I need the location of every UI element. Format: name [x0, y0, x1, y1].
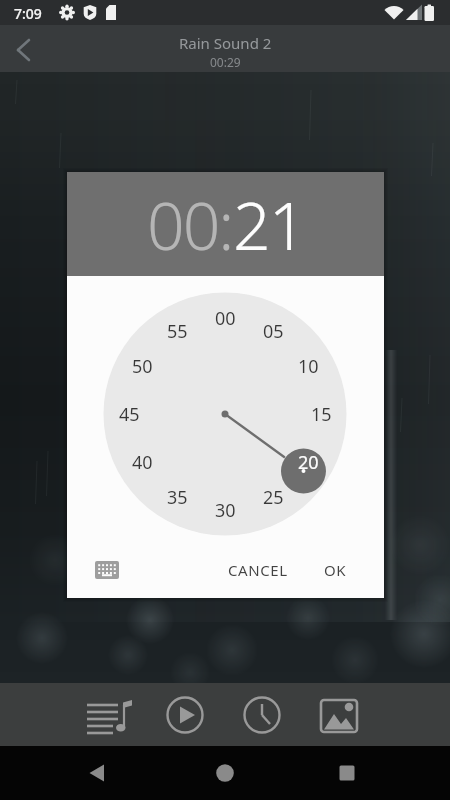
staticText: Rain Sound 2: [179, 33, 272, 53]
staticText: 35: [167, 485, 188, 510]
button[interactable]: [203, 751, 247, 795]
staticText: 55: [167, 319, 188, 344]
button[interactable]: [83, 692, 129, 738]
staticText: 00: [215, 306, 236, 331]
staticText: 45: [119, 402, 140, 427]
button[interactable]: [75, 751, 119, 795]
button[interactable]: [239, 692, 285, 738]
staticText: 50: [132, 354, 153, 379]
button[interactable]: [325, 751, 369, 795]
staticText: 40: [132, 450, 153, 475]
staticText: 30: [215, 498, 236, 523]
staticText: CANCEL: [228, 560, 288, 580]
button[interactable]: [6, 32, 42, 68]
staticText: 20: [298, 450, 319, 475]
staticText: 10: [298, 354, 319, 379]
staticText: 05: [263, 319, 284, 344]
button[interactable]: CANCEL: [225, 548, 291, 592]
button[interactable]: [316, 692, 362, 738]
staticText: 15: [311, 402, 332, 427]
staticText: 21: [233, 179, 305, 269]
button[interactable]: [85, 548, 129, 592]
staticText: 00:29: [210, 54, 241, 70]
button[interactable]: [162, 692, 208, 738]
staticText: 25: [263, 485, 284, 510]
staticText: OK: [324, 560, 347, 580]
staticText: 7:09: [14, 4, 42, 23]
button[interactable]: OK: [307, 548, 363, 592]
staticText: 00:: [147, 179, 233, 269]
